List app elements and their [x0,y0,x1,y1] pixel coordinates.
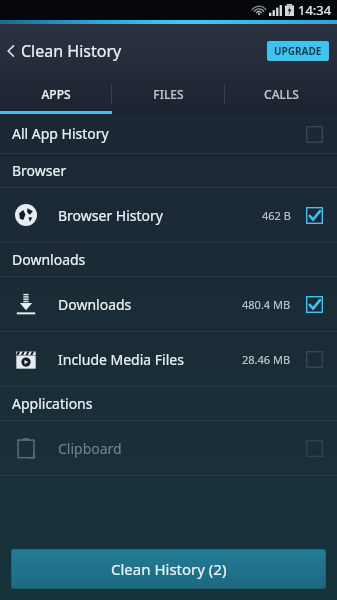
button[interactable]: Include Media Files [0,332,337,386]
button[interactable]: Unchecked [303,123,325,145]
staticText: 14:34 [298,1,332,19]
button[interactable]: Clipboard [0,421,337,475]
button[interactable]: FILES [112,77,224,111]
staticText: APPS [41,86,71,102]
button[interactable]: Checked [303,293,325,315]
button[interactable]: CALLS [225,77,337,111]
staticText: 480.4 MB [242,297,291,312]
staticText: 28.46 MB [242,352,291,367]
staticText: UPGRADE [274,44,322,58]
button[interactable]: Checked [303,204,325,226]
button[interactable]: Unchecked [303,348,325,370]
staticText: CALLS [264,86,299,102]
staticText: Clipboard [58,439,303,458]
staticText: Downloads [12,250,86,269]
staticText: Browser [12,161,67,180]
staticText: 462 B [262,208,291,223]
button[interactable]: All App History [0,114,337,153]
staticText: Applications [12,394,93,413]
button[interactable]: Back [0,24,126,77]
staticText: Clean History [21,40,122,62]
staticText: Include Media Files [58,350,242,369]
button[interactable]: Browser History [0,188,337,242]
staticText: Downloads [58,295,242,314]
staticText: All App History [12,124,303,143]
staticText: FILES [153,86,184,102]
button[interactable]: Downloads [0,277,337,331]
button[interactable]: UPGRADE [267,41,329,61]
staticText: Clean History (2) [111,559,227,579]
button[interactable]: Unchecked [303,437,325,459]
staticText: Browser History [58,206,262,225]
button[interactable]: Clean History (2) [11,549,326,589]
button[interactable]: APPS [0,77,111,111]
